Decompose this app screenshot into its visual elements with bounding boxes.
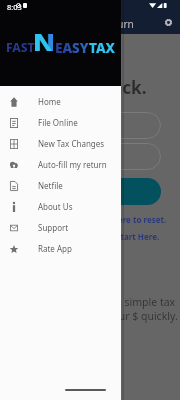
staticText: Start My Return — [60, 17, 134, 31]
button[interactable]: Sign In — [19, 178, 161, 205]
button[interactable]: Auto-fill my return — [0, 154, 121, 175]
staticText: 8:03 — [7, 2, 22, 12]
staticText: TAX — [89, 39, 115, 57]
button[interactable]: Rate App — [0, 238, 121, 259]
staticText: Home — [38, 96, 61, 107]
button[interactable]: Email — [19, 112, 161, 139]
button[interactable]: Password — [19, 143, 161, 170]
button[interactable]: Forgot password? Click here to reset. — [19, 214, 167, 225]
staticText: Password — [33, 151, 70, 162]
button[interactable]: Settings — [161, 15, 176, 30]
staticText: EASY — [55, 39, 89, 57]
staticText: Rate App — [38, 243, 72, 254]
button[interactable]: New Tax Changes — [0, 133, 121, 154]
staticText: FAST — [6, 39, 35, 55]
button[interactable]: File Online — [0, 112, 121, 133]
staticText: Netfile — [38, 180, 63, 191]
staticText: File Online — [38, 117, 78, 128]
staticText: Fast and Easy Tax is a simple tax return… — [17, 295, 178, 323]
staticText: Welcome Back. — [19, 76, 147, 99]
staticText: Support — [38, 222, 69, 233]
button[interactable]: Netfile — [0, 175, 121, 196]
button[interactable]: About Us — [0, 196, 121, 217]
button[interactable]: Don't have an account? Start Here. — [19, 231, 160, 242]
staticText: About Us — [38, 201, 73, 212]
staticText: New Tax Changes — [38, 138, 105, 149]
button[interactable]: Home — [0, 91, 121, 112]
staticText: Auto-fill my return — [38, 159, 107, 170]
button[interactable]: Support — [0, 217, 121, 238]
staticText: Email — [33, 120, 54, 131]
